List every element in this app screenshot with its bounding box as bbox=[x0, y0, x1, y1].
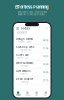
button[interactable]: Design review bbox=[13, 37, 50, 45]
staticText: Effortless Planning bbox=[15, 5, 49, 9]
staticText: 16:40 bbox=[43, 63, 48, 66]
staticText: Today bbox=[16, 94, 21, 96]
staticText: Health bbox=[20, 73, 27, 75]
staticText: Plan bbox=[35, 94, 38, 96]
button[interactable]: Read chapter bbox=[13, 77, 50, 85]
button[interactable]: Client call bbox=[13, 53, 50, 61]
staticText: Standup sync bbox=[16, 46, 34, 49]
staticText: Me bbox=[44, 94, 47, 96]
button[interactable]: Me bbox=[41, 90, 50, 97]
staticText: Personal bbox=[21, 65, 29, 67]
staticText: Read chapter bbox=[16, 78, 33, 81]
staticText: Today bbox=[20, 27, 30, 30]
staticText: Evening bbox=[21, 81, 28, 83]
button[interactable]: Write summary bbox=[13, 61, 50, 69]
staticText: 18:00 bbox=[43, 71, 48, 74]
staticText: 21:10 bbox=[43, 79, 48, 82]
staticText: 09:30 bbox=[43, 39, 48, 42]
staticText: Engineering bbox=[20, 49, 31, 51]
button[interactable]: Standup sync bbox=[13, 45, 50, 53]
button[interactable]: Gym session bbox=[13, 69, 50, 77]
staticText: Product team bbox=[18, 41, 31, 43]
button[interactable]: Plan bbox=[32, 90, 41, 97]
staticText: Keep every task, meeting and deadline in… bbox=[17, 11, 46, 16]
staticText: Search bbox=[20, 31, 26, 34]
staticText: 11:00 bbox=[43, 47, 48, 50]
button[interactable]: Menu bbox=[16, 27, 19, 30]
staticText: Gym session bbox=[16, 70, 31, 73]
staticText: Client call bbox=[16, 54, 29, 57]
staticText: Acme Corp bbox=[17, 57, 28, 59]
button[interactable]: Search bbox=[16, 31, 28, 34]
staticText: 14:15 bbox=[43, 55, 48, 58]
staticText: Write summary bbox=[16, 62, 33, 65]
button[interactable]: Today bbox=[13, 90, 23, 97]
staticText: Inbox bbox=[25, 94, 30, 96]
button[interactable]: Inbox bbox=[23, 90, 32, 97]
staticText: Design review bbox=[16, 38, 33, 41]
